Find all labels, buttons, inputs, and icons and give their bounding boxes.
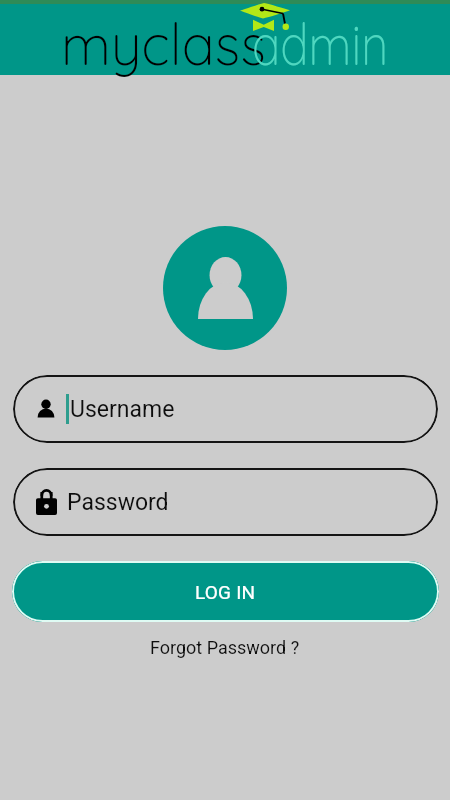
button[interactable]: Password xyxy=(13,468,438,536)
button[interactable]: Forgot Password ? xyxy=(144,635,306,660)
staticText: admin xyxy=(252,7,389,80)
button[interactable]: LOG IN xyxy=(12,561,439,622)
staticText: Forgot Password ? xyxy=(150,637,300,658)
button[interactable]: Username xyxy=(13,375,438,443)
staticText: Password xyxy=(67,489,169,516)
staticText: Username xyxy=(70,396,175,423)
staticText: myclass xyxy=(61,7,267,80)
staticText: LOG IN xyxy=(195,581,256,603)
